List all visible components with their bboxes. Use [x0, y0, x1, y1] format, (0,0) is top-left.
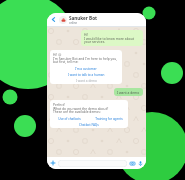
button[interactable]: Training for agents — [89, 116, 128, 122]
staticText: online — [69, 21, 78, 25]
button[interactable]: I want to talk to a human — [50, 72, 122, 78]
staticText: I want a demo — [76, 79, 97, 83]
staticText: I would like to know more about your ser… — [84, 36, 140, 44]
staticText: Use of chatbots — [58, 117, 81, 121]
button[interactable]: Hi! — [81, 30, 143, 46]
staticText: Perfect! — [53, 102, 65, 106]
button[interactable]: Voice message — [137, 160, 143, 166]
button[interactable]: Back — [50, 16, 57, 23]
button[interactable]: Use of chatbots — [50, 116, 89, 122]
button[interactable]: Chatbot FAQs — [50, 122, 128, 128]
staticText: What do you want the demo about? These a… — [53, 106, 109, 114]
button[interactable]: I want a demo — [114, 88, 143, 96]
staticText: Hi! — [84, 32, 89, 36]
button[interactable]: I want a demo — [50, 78, 122, 84]
staticText: Chatbot FAQs — [79, 123, 99, 127]
button[interactable]: Attach — [50, 160, 56, 166]
staticText: Training for agents — [95, 117, 123, 121]
staticText: I'm Sanuker Bot and I'm here to help you… — [53, 56, 119, 64]
staticText: Hi! 😊 — [53, 52, 62, 56]
staticText: I want to talk to a human — [68, 73, 105, 77]
button[interactable]: Message — [58, 160, 127, 167]
button[interactable]: Camera — [129, 160, 135, 166]
staticText: I'm a customer — [75, 67, 97, 71]
staticText: I want a demo — [117, 90, 140, 94]
button[interactable]: I'm a customer — [50, 66, 122, 72]
staticText: Sanuker Bot — [69, 15, 98, 21]
